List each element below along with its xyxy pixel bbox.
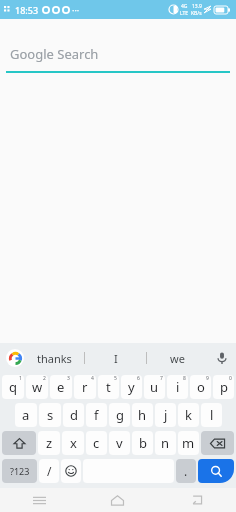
button[interactable]: u — [144, 375, 165, 399]
staticText: i — [176, 378, 180, 396]
button[interactable]: d — [63, 403, 84, 427]
staticText: p — [220, 378, 228, 396]
button[interactable]: / — [39, 459, 59, 483]
button[interactable]: . — [176, 459, 196, 483]
button[interactable]: r — [74, 375, 96, 399]
staticText: r — [82, 378, 88, 396]
other: Voice input — [215, 351, 229, 365]
button[interactable]: ?123 — [2, 459, 37, 483]
button[interactable]: we — [147, 343, 208, 373]
staticText: LTE — [180, 10, 189, 17]
button[interactable]: I — [85, 343, 146, 373]
button[interactable]: n — [155, 431, 176, 455]
staticText: o — [197, 378, 205, 396]
button[interactable]: Backspace — [201, 431, 234, 455]
staticText: 13.9 — [192, 3, 202, 10]
staticText: l — [210, 406, 214, 424]
staticText: 0 — [229, 375, 232, 382]
button[interactable]: v — [109, 431, 130, 455]
button[interactable]: Search — [198, 459, 234, 483]
button[interactable]: x — [62, 431, 84, 455]
staticText: d — [70, 406, 78, 424]
button[interactable]: m — [178, 431, 199, 455]
staticText: x — [70, 434, 77, 452]
staticText: j — [164, 406, 168, 424]
staticText: a — [22, 406, 30, 424]
staticText: 6 — [137, 375, 140, 382]
button[interactable]: h — [132, 403, 153, 427]
button[interactable]: c — [86, 431, 107, 455]
staticText: 5 — [114, 375, 117, 382]
button[interactable]: g — [109, 403, 130, 427]
staticText: g — [116, 406, 124, 424]
staticText: 9 — [206, 375, 209, 382]
staticText: f — [94, 406, 99, 424]
staticText: e — [57, 378, 65, 396]
button[interactable]: l — [201, 403, 222, 427]
button[interactable]: t — [98, 375, 119, 399]
staticText: thanks — [37, 351, 72, 366]
staticText: w — [32, 378, 43, 396]
staticText: s — [47, 406, 54, 424]
staticText: y — [128, 378, 135, 396]
staticText: n — [161, 434, 170, 452]
staticText: h — [138, 406, 147, 424]
staticText: Google Search — [10, 45, 99, 63]
staticText: KB/s — [191, 10, 202, 17]
staticText: ··· — [72, 4, 80, 16]
button[interactable]: y — [121, 375, 142, 399]
button[interactable]: q — [2, 375, 24, 399]
staticText: 18:53 — [15, 4, 39, 16]
staticText: u — [150, 378, 159, 396]
button[interactable]: Emoji — [61, 459, 81, 483]
button[interactable]: Back — [157, 488, 236, 512]
button[interactable]: Google Search — [0, 19, 236, 73]
button[interactable]: Google — [6, 349, 24, 367]
button[interactable]: s — [39, 403, 61, 427]
staticText: c — [93, 434, 100, 452]
button[interactable]: Recents — [0, 488, 78, 512]
staticText: b — [139, 434, 147, 452]
staticText: 4G — [181, 3, 188, 10]
staticText: 7 — [160, 375, 163, 382]
staticText: z — [46, 434, 53, 452]
staticText: 8 — [183, 375, 186, 382]
button[interactable]: j — [155, 403, 176, 427]
button[interactable]: f — [86, 403, 107, 427]
staticText: . — [184, 463, 188, 479]
button[interactable]: i — [167, 375, 188, 399]
button[interactable]: Voice input — [208, 343, 236, 373]
staticText: t — [106, 378, 111, 396]
button[interactable]: thanks — [24, 343, 84, 373]
staticText: q — [9, 378, 17, 396]
button[interactable]: w — [26, 375, 48, 399]
button[interactable]: k — [178, 403, 199, 427]
staticText: we — [170, 351, 185, 366]
button[interactable]: a — [15, 403, 37, 427]
button[interactable]: e — [50, 375, 72, 399]
button[interactable]: o — [190, 375, 211, 399]
staticText: 3 — [67, 375, 70, 382]
staticText: 2 — [43, 375, 46, 382]
staticText: / — [47, 463, 52, 479]
button[interactable]: Home — [78, 488, 157, 512]
staticText: m — [182, 434, 195, 452]
button[interactable]: Shift — [2, 431, 36, 455]
button[interactable]: b — [132, 431, 153, 455]
button[interactable]: z — [38, 431, 60, 455]
staticText: 4 — [91, 375, 94, 382]
button[interactable]: p — [213, 375, 234, 399]
staticText: I — [114, 351, 118, 366]
staticText: v — [116, 434, 123, 452]
staticText: k — [185, 406, 192, 424]
staticText: 1 — [19, 375, 22, 382]
staticText: ?123 — [10, 465, 30, 477]
